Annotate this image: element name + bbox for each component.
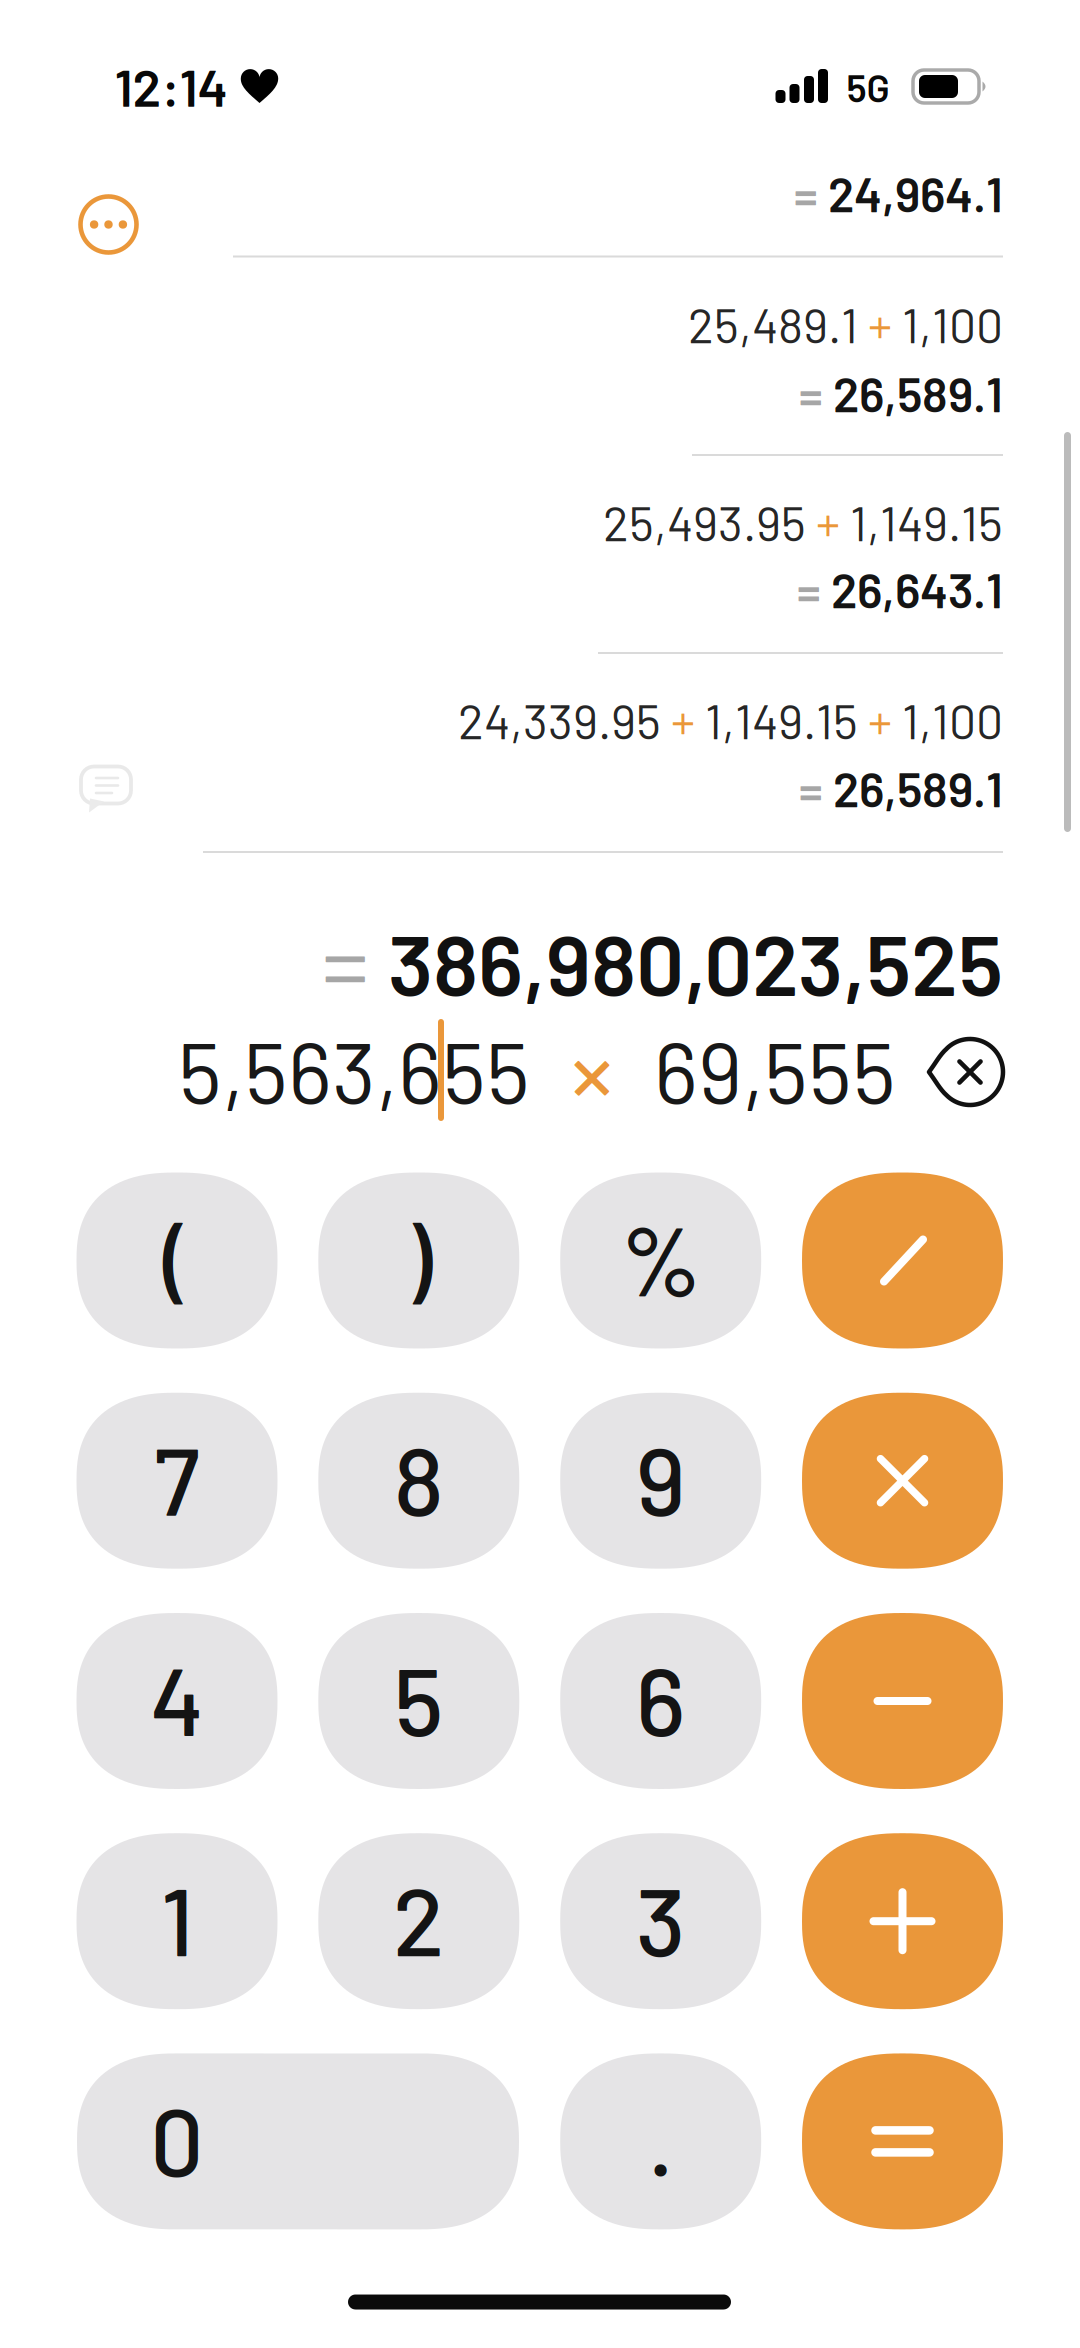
button[interactable]: Delete	[928, 1037, 1004, 1107]
button[interactable]: Math note	[79, 766, 133, 813]
button[interactable]: %	[560, 1172, 761, 1348]
staticText: +	[868, 691, 892, 749]
staticText: +	[671, 691, 695, 749]
staticText: 5G	[846, 64, 889, 110]
staticText: .	[648, 2081, 674, 2195]
staticText: ×	[570, 1008, 614, 1132]
staticText: 1,149.15	[840, 493, 1003, 551]
button[interactable]: 6	[560, 1613, 761, 1789]
button[interactable]: )	[318, 1172, 519, 1348]
button[interactable]: Equals	[802, 2053, 1003, 2229]
button[interactable]: 1	[76, 1833, 277, 2009]
staticText: 3	[636, 1861, 686, 1975]
staticText: =	[799, 759, 833, 817]
staticText: 12:14	[114, 55, 227, 117]
staticText: 24,339.95	[458, 691, 671, 749]
staticText: =	[794, 164, 828, 222]
staticText: 4	[150, 1641, 204, 1755]
staticText: =	[322, 906, 388, 1018]
staticText: 9	[636, 1421, 686, 1535]
button[interactable]: Multiply	[802, 1393, 1003, 1569]
button[interactable]: (	[76, 1172, 277, 1348]
staticText: 24,964.1	[828, 164, 1003, 222]
button[interactable]: 2	[318, 1833, 519, 2009]
button[interactable]: 0	[77, 2053, 519, 2229]
button[interactable]: Subtract	[802, 1613, 1003, 1789]
button[interactable]: 4	[76, 1613, 277, 1789]
staticText: 1,100	[892, 691, 1003, 749]
staticText: +	[868, 295, 892, 353]
button[interactable]: History	[77, 193, 139, 255]
button[interactable]: 3	[560, 1833, 761, 2009]
staticText: 1	[160, 1861, 193, 1975]
staticText: 25,489.1	[688, 295, 868, 353]
staticText: 2	[393, 1861, 445, 1975]
button[interactable]: Add	[802, 1833, 1003, 2009]
button[interactable]: Divide	[802, 1172, 1003, 1348]
staticText: 386,980,023,525	[388, 911, 1003, 1013]
staticText: 69,555	[654, 1019, 896, 1121]
staticText: 26,589.1	[833, 759, 1003, 817]
staticText: 1,100	[892, 295, 1003, 353]
staticText: (	[163, 1200, 191, 1314]
staticText: 5,563,655	[178, 1019, 530, 1121]
staticText: 8	[394, 1421, 444, 1535]
staticText: 25,493.95	[603, 493, 816, 551]
staticText: %	[620, 1199, 701, 1316]
button[interactable]: 7	[76, 1393, 277, 1569]
staticText: 5	[394, 1641, 444, 1755]
staticText: 1,149.15	[695, 691, 868, 749]
button[interactable]: 9	[560, 1393, 761, 1569]
button[interactable]: .	[560, 2053, 761, 2229]
staticText: =	[797, 560, 831, 618]
button[interactable]: 5	[318, 1613, 519, 1789]
staticText: +	[816, 493, 840, 551]
button[interactable]: 8	[318, 1393, 519, 1569]
staticText: )	[405, 1200, 433, 1314]
staticText: 26,589.1	[833, 364, 1003, 422]
staticText: 0	[150, 2081, 204, 2195]
staticText: =	[799, 364, 833, 422]
staticText: 26,643.1	[831, 560, 1003, 618]
staticText: 6	[636, 1641, 686, 1755]
staticText: 7	[154, 1421, 200, 1535]
